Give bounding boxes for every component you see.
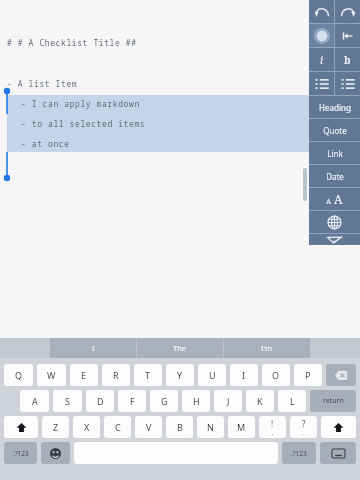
staticText: G [161,395,168,407]
staticText: Heading [319,102,351,113]
button[interactable]: ! [259,416,286,438]
button[interactable]: U [198,364,226,386]
staticText: C [115,421,121,433]
button[interactable]: O [262,364,290,386]
staticText: N [207,421,214,433]
button[interactable]: Numbered list [335,72,360,95]
button[interactable]: i [309,48,334,71]
button[interactable]: F [118,390,146,412]
button[interactable]: C [104,416,131,438]
staticText: - A list Item [7,78,78,89]
button[interactable]: E [70,364,98,386]
button[interactable]: Q [4,364,33,386]
staticText: . [303,429,305,437]
button[interactable]: I [50,338,136,358]
button[interactable]: Shift [321,416,356,438]
staticText: .?123 [291,449,307,458]
staticText: Link [327,148,343,159]
staticText: I [242,369,246,381]
button[interactable]: T [134,364,162,386]
button[interactable]: Indent [309,24,334,47]
button[interactable]: Shift [4,416,38,438]
button[interactable]: X [73,416,100,438]
button[interactable]: R [102,364,130,386]
staticText: I [92,343,95,353]
staticText: .?123 [13,449,29,458]
button[interactable]: K [246,390,274,412]
staticText: The [173,343,187,353]
button[interactable]: P [294,364,322,386]
button[interactable]: The [137,338,223,358]
staticText: i [320,53,324,67]
staticText: J [227,395,230,407]
staticText: - at once [21,138,70,149]
button[interactable]: b [335,48,360,71]
button[interactable]: .?123 [282,442,316,464]
staticText: - to all selected items [21,118,146,129]
button[interactable]: Send [309,234,360,245]
staticText: X [84,421,90,433]
button[interactable]: Z [42,416,69,438]
staticText: D [97,395,104,407]
button[interactable]: V [135,416,162,438]
button[interactable]: Heading [309,96,360,118]
button[interactable]: Quote [309,119,360,141]
staticText: B [177,421,183,433]
staticText: ! [271,418,274,429]
button[interactable]: .?123 [4,442,37,464]
button[interactable]: G [150,390,178,412]
button[interactable]: H [182,390,210,412]
button[interactable]: W [37,364,66,386]
button[interactable]: Font size [309,188,360,210]
button[interactable]: return [310,390,356,412]
staticText: b [344,53,351,67]
staticText: A [334,191,343,207]
button[interactable]: Backspace [326,364,356,386]
staticText: F [130,395,135,407]
button[interactable]: Outdent [335,24,360,47]
button[interactable]: Y [166,364,194,386]
button[interactable]: L [278,390,306,412]
button[interactable]: Date [309,165,360,187]
staticText: ? [302,418,306,429]
staticText: Q [15,369,23,381]
button[interactable]: A [20,390,49,412]
button[interactable]: B [166,416,193,438]
staticText: A [32,395,38,407]
button[interactable]: N [197,416,224,438]
staticText: O [272,369,280,381]
button[interactable]: Redo [335,0,360,23]
button[interactable]: I'm [224,338,310,358]
staticText: T [145,369,151,381]
button[interactable]: S [53,390,82,412]
staticText: Y [177,369,183,381]
staticText: return [323,396,344,406]
staticText: S [65,395,70,407]
staticText: K [257,395,263,407]
staticText: Date [326,171,344,182]
staticText: E [81,369,87,381]
button[interactable]: Emoji [41,442,70,464]
staticText: R [113,369,119,381]
staticText: M [237,421,246,433]
staticText: P [305,369,311,381]
button[interactable]: Bullet list [309,72,334,95]
staticText: V [146,421,152,433]
staticText: , [272,429,274,437]
staticText: L [290,395,295,407]
button[interactable]: M [228,416,255,438]
button[interactable]: D [86,390,114,412]
staticText: A [326,197,331,207]
button[interactable]: Link [309,142,360,164]
button[interactable]: ? [290,416,317,438]
button[interactable]: J [214,390,242,412]
button[interactable]: Undo [309,0,334,23]
staticText: - I can apply markdown [21,98,140,109]
staticText: U [209,369,216,381]
button[interactable]: I [230,364,258,386]
staticText: H [193,395,200,407]
staticText: # # A Checklist Title ## [7,37,137,48]
button[interactable]: Globe [309,211,360,233]
button[interactable]: Hide keyboard [320,442,356,464]
